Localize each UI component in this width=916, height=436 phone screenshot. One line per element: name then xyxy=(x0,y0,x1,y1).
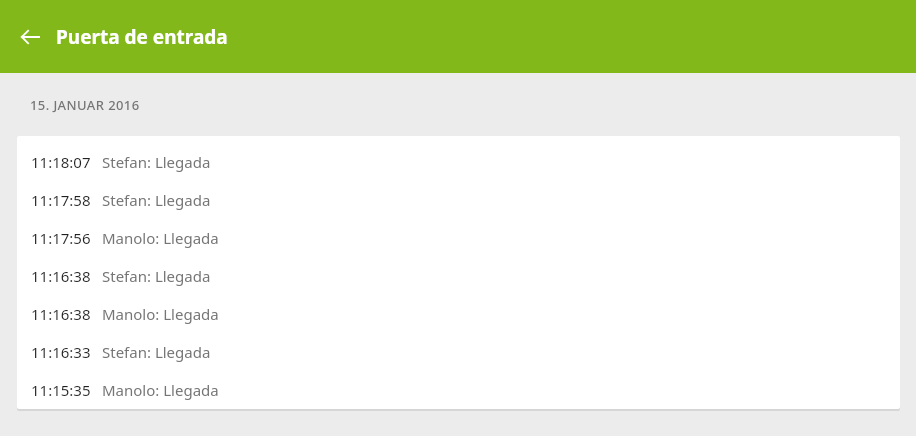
button[interactable]: 11:17:56 xyxy=(17,219,900,257)
staticText: 11:16:38 xyxy=(31,266,91,286)
staticText: 11:16:38 xyxy=(31,304,91,324)
staticText: Manolo: Llegada xyxy=(102,304,219,324)
staticText: 15. JANUAR 2016 xyxy=(30,96,140,114)
staticText: Stefan: Llegada xyxy=(102,266,211,286)
button[interactable]: 11:16:33 xyxy=(17,333,900,371)
staticText: Manolo: Llegada xyxy=(102,228,219,248)
staticText: 11:17:58 xyxy=(31,190,91,210)
button[interactable]: 11:15:35 xyxy=(17,371,900,409)
button[interactable]: Back xyxy=(12,19,48,55)
button[interactable]: 11:16:38 xyxy=(17,257,900,295)
staticText: Puerta de entrada xyxy=(56,24,228,50)
button[interactable]: 11:17:58 xyxy=(17,181,900,219)
staticText: 11:16:33 xyxy=(31,342,91,362)
staticText: 11:15:35 xyxy=(31,380,91,400)
staticText: 11:17:56 xyxy=(31,228,91,248)
staticText: Manolo: Llegada xyxy=(102,380,219,400)
staticText: Stefan: Llegada xyxy=(102,190,211,210)
staticText: Stefan: Llegada xyxy=(102,152,211,172)
button[interactable]: 11:16:38 xyxy=(17,295,900,333)
button[interactable]: 11:18:07 xyxy=(17,143,900,181)
staticText: 11:18:07 xyxy=(31,152,91,172)
staticText: Stefan: Llegada xyxy=(102,342,211,362)
